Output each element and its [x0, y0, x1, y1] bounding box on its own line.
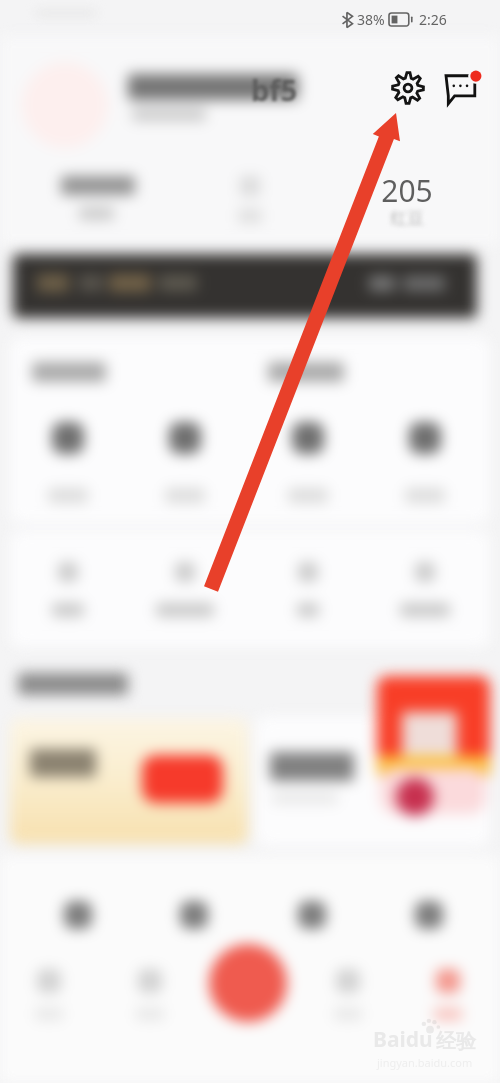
- staticText: bf5: [251, 70, 298, 109]
- staticText: 38%: [357, 10, 385, 29]
- staticText: 2:26: [419, 10, 447, 29]
- staticText: 经验: [436, 1029, 476, 1054]
- button[interactable]: Settings: [378, 58, 438, 118]
- staticText: Baidu: [373, 1025, 433, 1054]
- staticText: jingyan.baidu.com: [377, 1055, 473, 1070]
- staticText: 205: [378, 170, 436, 211]
- button[interactable]: Messages: [434, 58, 494, 118]
- staticText: 红豆: [378, 208, 436, 229]
